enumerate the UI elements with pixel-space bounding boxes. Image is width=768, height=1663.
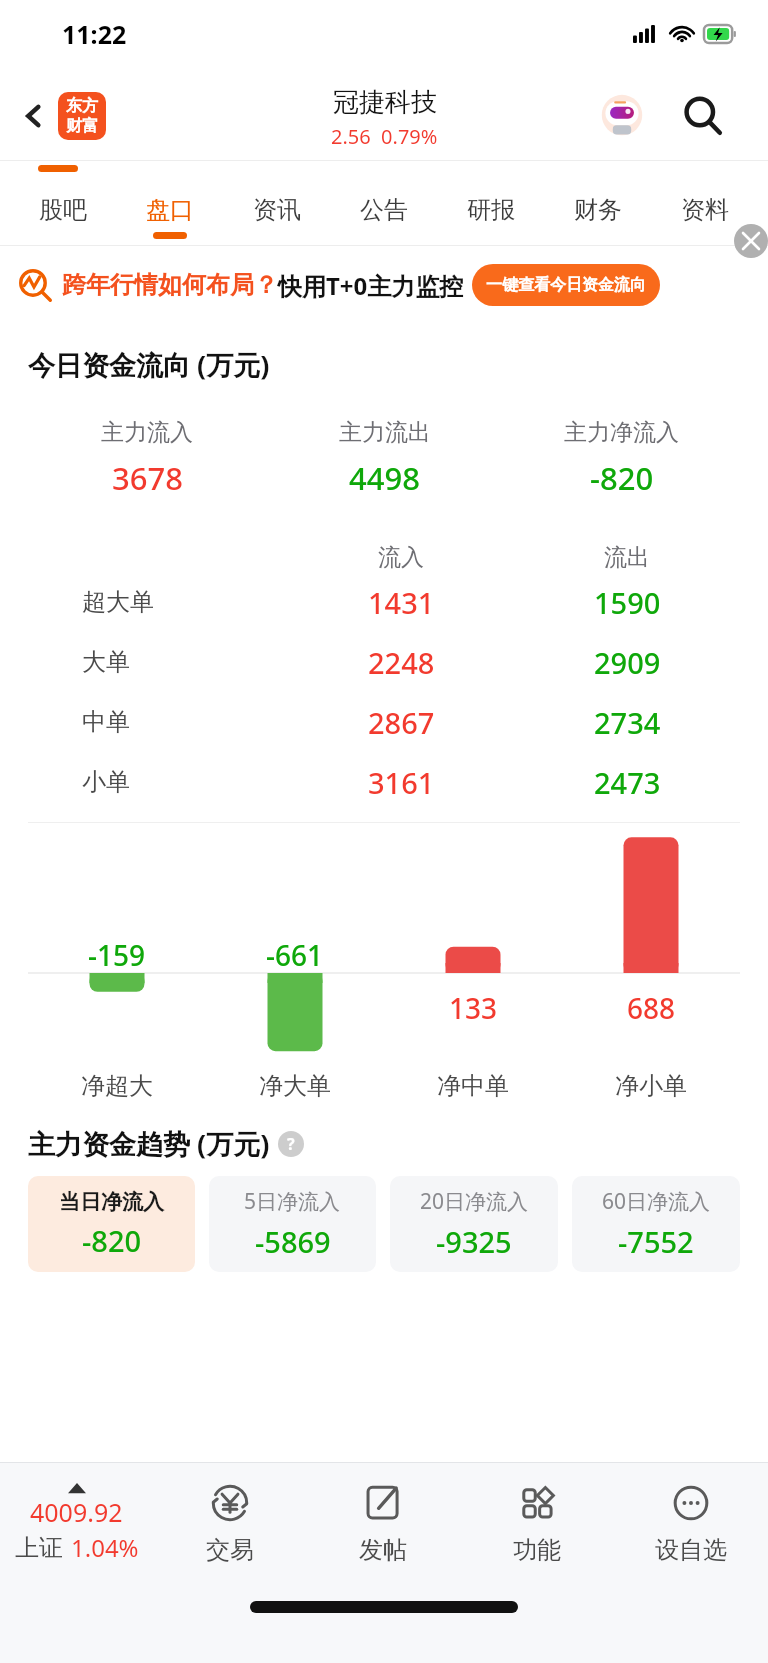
button[interactable]: 股吧 — [10, 175, 116, 245]
staticText: 冠捷科技 — [333, 86, 437, 119]
button[interactable]: 4009.92 — [0, 1463, 153, 1583]
button[interactable]: 超大单 — [28, 572, 740, 632]
staticText: 3161 — [368, 763, 435, 802]
staticText: 1590 — [594, 583, 661, 622]
staticText: 财富 — [66, 116, 98, 136]
button[interactable]: 大单 — [28, 632, 740, 692]
button[interactable]: Back — [8, 90, 60, 142]
button[interactable]: 资讯 — [223, 175, 330, 245]
button[interactable]: 研报 — [437, 175, 544, 245]
staticText: 财务 — [574, 195, 622, 225]
staticText: 2248 — [368, 643, 435, 682]
button[interactable]: 交易 — [153, 1463, 306, 1583]
staticText: 当日净流入 — [59, 1189, 164, 1215]
staticText: 功能 — [513, 1535, 561, 1565]
staticText: 资讯 — [253, 195, 301, 225]
staticText: 发帖 — [359, 1535, 407, 1565]
staticText: -5869 — [255, 1222, 331, 1261]
button[interactable]: 一键查看今日资金流向 — [486, 264, 646, 306]
staticText: 大单 — [82, 647, 130, 677]
staticText: 小单 — [82, 767, 130, 797]
staticText: 研报 — [467, 195, 515, 225]
staticText: 2734 — [594, 703, 661, 742]
staticText: -820 — [590, 457, 654, 499]
staticText: 净小单 — [615, 1071, 687, 1101]
staticText: 主力净流入 — [564, 418, 679, 447]
staticText: 2909 — [594, 643, 661, 682]
staticText: 盘口 — [146, 195, 194, 225]
staticText: 688 — [627, 989, 676, 1027]
staticText: 超大单 — [82, 587, 154, 617]
staticText: 资料 — [681, 195, 729, 225]
staticText: 股吧 — [39, 195, 87, 225]
staticText: 4498 — [349, 457, 420, 499]
staticText: 主力资金趋势 (万元) — [28, 1125, 270, 1162]
button[interactable]: 设自选 — [614, 1463, 768, 1583]
button[interactable]: 发帖 — [306, 1463, 460, 1583]
staticText: 2.56 0.79% — [331, 123, 438, 150]
button[interactable]: 盘口 — [116, 175, 223, 245]
staticText: 东方 — [66, 96, 98, 116]
staticText: 流出 — [604, 543, 650, 572]
button[interactable]: 5日净流入 — [209, 1176, 376, 1272]
button[interactable]: 关闭 — [734, 224, 768, 258]
staticText: 2473 — [594, 763, 661, 802]
staticText: 133 — [449, 989, 498, 1027]
staticText: 5日净流入 — [244, 1187, 341, 1216]
staticText: 上证 — [15, 1533, 63, 1563]
staticText: 设自选 — [655, 1535, 727, 1565]
staticText: 流入 — [378, 543, 424, 572]
staticText: 快用T+0主力监控 — [278, 269, 464, 302]
button[interactable]: 东方财富 — [58, 92, 106, 140]
button[interactable]: 公告 — [330, 175, 437, 245]
button[interactable]: 20日净流入 — [390, 1176, 558, 1272]
staticText: 11:22 — [62, 17, 127, 51]
staticText: 净大单 — [259, 1071, 331, 1101]
staticText: 交易 — [206, 1535, 254, 1565]
button[interactable]: 60日净流入 — [572, 1176, 740, 1272]
staticText: 主力流入 — [101, 418, 193, 447]
staticText: 中单 — [82, 707, 130, 737]
button[interactable]: 资料 — [651, 175, 758, 245]
staticText: 净中单 — [437, 1071, 509, 1101]
button[interactable]: 功能 — [460, 1463, 614, 1583]
button[interactable]: 跨年行情如何布局？ — [18, 246, 754, 324]
staticText: ? — [287, 1133, 295, 1155]
button[interactable]: 当日净流入 — [28, 1176, 195, 1272]
button[interactable]: AI助手 — [594, 88, 650, 144]
staticText: -661 — [266, 936, 324, 974]
staticText: -9325 — [436, 1222, 512, 1261]
staticText: 跨年行情如何布局？ — [62, 270, 278, 300]
staticText: 净超大 — [81, 1071, 153, 1101]
staticText: 公告 — [360, 195, 408, 225]
staticText: 4009.92 — [30, 1495, 123, 1529]
button[interactable]: 主力流入 — [28, 399, 740, 517]
button[interactable]: 帮助 — [278, 1131, 304, 1157]
button[interactable]: Search — [672, 85, 734, 147]
staticText: 2867 — [368, 703, 435, 742]
staticText: 一键查看今日资金流向 — [486, 275, 646, 295]
staticText: 1431 — [368, 583, 435, 622]
staticText: 3678 — [112, 457, 183, 499]
staticText: 1.04% — [71, 1531, 139, 1564]
button[interactable]: 中单 — [28, 692, 740, 752]
staticText: -7552 — [618, 1222, 694, 1261]
staticText: -159 — [88, 936, 146, 974]
button[interactable]: 小单 — [28, 752, 740, 812]
button[interactable]: 财务 — [544, 175, 651, 245]
staticText: 60日净流入 — [602, 1187, 711, 1216]
staticText: 20日净流入 — [420, 1187, 529, 1216]
staticText: 今日资金流向 (万元) — [28, 346, 270, 383]
staticText: -820 — [82, 1221, 142, 1260]
staticText: 主力流出 — [339, 418, 431, 447]
